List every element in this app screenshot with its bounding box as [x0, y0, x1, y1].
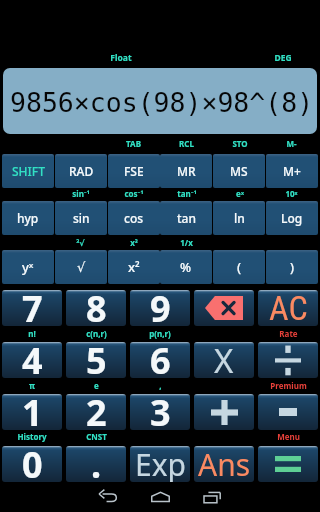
staticText: FSE: [124, 163, 144, 179]
button[interactable]: (: [213, 250, 265, 284]
button[interactable]: AC: [258, 290, 318, 326]
button[interactable]: x²: [108, 250, 160, 284]
staticText: Float: [110, 52, 132, 64]
staticText: tan: [177, 210, 196, 226]
staticText: (: [237, 258, 242, 276]
button[interactable]: MR: [160, 154, 212, 188]
button[interactable]: 8: [66, 290, 126, 326]
button[interactable]: 1: [2, 394, 62, 430]
button[interactable]: Plus: [194, 394, 254, 430]
staticText: Log: [281, 210, 303, 226]
staticText: 0: [22, 440, 43, 489]
button[interactable]: MS: [213, 154, 265, 188]
button[interactable]: 3: [130, 394, 190, 430]
staticText: History: [17, 431, 47, 442]
button[interactable]: Log: [266, 201, 318, 235]
button[interactable]: Backspace: [194, 290, 254, 326]
button[interactable]: 0: [2, 446, 62, 482]
staticText: sin⁻¹: [72, 188, 90, 199]
staticText: Ans: [198, 444, 251, 485]
staticText: sin: [73, 210, 90, 226]
staticText: e: [94, 380, 99, 391]
staticText: ,: [159, 380, 162, 391]
staticText: c(n,r): [86, 328, 107, 339]
staticText: M+: [283, 163, 301, 179]
staticText: ln: [234, 210, 245, 226]
button[interactable]: √: [55, 250, 107, 284]
button[interactable]: hyp: [2, 201, 54, 235]
button[interactable]: 9: [130, 290, 190, 326]
button[interactable]: %: [160, 250, 212, 284]
staticText: π: [29, 380, 35, 391]
button[interactable]: 2: [66, 394, 126, 430]
button[interactable]: Equals: [258, 446, 318, 482]
staticText: 9856×cos(98)×98^(8): [10, 87, 314, 118]
staticText: 6: [150, 336, 171, 385]
staticText: MR: [177, 163, 196, 179]
button[interactable]: FSE: [108, 154, 160, 188]
button[interactable]: ln: [213, 201, 265, 235]
button[interactable]: Home: [134, 482, 186, 512]
staticText: tan⁻¹: [177, 188, 197, 199]
staticText: 4: [22, 336, 43, 385]
button[interactable]: cos: [108, 201, 160, 235]
staticText: %: [180, 258, 192, 276]
button[interactable]: SHIFT: [2, 154, 54, 188]
staticText: Rate: [279, 328, 298, 339]
staticText: √: [77, 260, 86, 275]
button[interactable]: Back: [82, 482, 134, 512]
staticText: STO: [232, 138, 248, 149]
staticText: cos⁻¹: [124, 188, 144, 199]
button[interactable]: Multiply: [194, 342, 254, 378]
staticText: ): [290, 258, 295, 276]
staticText: DEG: [274, 52, 292, 64]
button[interactable]: Exp: [130, 446, 190, 482]
staticText: 5: [86, 336, 107, 385]
staticText: ³√: [76, 237, 85, 248]
button[interactable]: 5: [66, 342, 126, 378]
staticText: X: [214, 338, 234, 383]
staticText: TAB: [126, 138, 141, 149]
staticText: SHIFT: [12, 163, 45, 179]
button[interactable]: Ans: [194, 446, 254, 482]
button[interactable]: Minus: [258, 394, 318, 430]
staticText: x²: [128, 258, 140, 276]
staticText: yˣ: [22, 258, 34, 276]
staticText: RCL: [179, 138, 194, 149]
staticText: 3: [150, 388, 171, 437]
button[interactable]: tan: [160, 201, 212, 235]
button[interactable]: RAD: [55, 154, 107, 188]
staticText: Premium: [270, 380, 307, 391]
staticText: cos: [124, 210, 144, 226]
staticText: 1/x: [180, 237, 193, 248]
button[interactable]: ): [266, 250, 318, 284]
staticText: 1: [22, 388, 43, 437]
staticText: M-: [286, 138, 297, 149]
button[interactable]: 7: [2, 290, 62, 326]
button[interactable]: 6: [130, 342, 190, 378]
staticText: Exp: [135, 444, 186, 485]
staticText: 7: [22, 284, 43, 333]
button[interactable]: Recents: [186, 482, 238, 512]
staticText: RAD: [69, 163, 94, 179]
staticText: CNST: [86, 431, 107, 442]
button[interactable]: M+: [266, 154, 318, 188]
staticText: p(n,r): [149, 328, 171, 339]
staticText: MS: [230, 163, 248, 179]
staticText: 2: [86, 388, 107, 437]
staticText: 9: [150, 284, 171, 333]
staticText: Menu: [277, 431, 300, 442]
staticText: 10ˣ: [285, 188, 298, 199]
button[interactable]: Divide: [258, 342, 318, 378]
staticText: eˣ: [236, 188, 244, 199]
staticText: .: [91, 440, 102, 489]
staticText: x³: [130, 237, 138, 248]
button[interactable]: .: [66, 446, 126, 482]
staticText: AC: [269, 288, 308, 328]
button[interactable]: sin: [55, 201, 107, 235]
staticText: n!: [28, 328, 36, 339]
button[interactable]: 4: [2, 342, 62, 378]
staticText: 8: [86, 284, 107, 333]
staticText: hyp: [17, 210, 39, 226]
button[interactable]: yˣ: [2, 250, 54, 284]
